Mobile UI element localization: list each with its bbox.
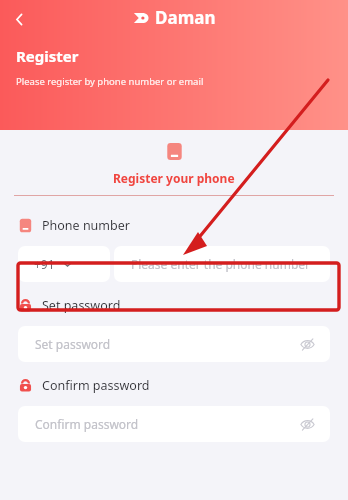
button[interactable]: Please enter the phone number	[114, 246, 330, 282]
button[interactable]: Show password	[298, 415, 316, 433]
button[interactable]: +91	[18, 246, 110, 282]
staticText: Please register by phone number or email	[16, 75, 204, 88]
button[interactable]: Register your phone	[113, 142, 235, 186]
staticText: Set password	[35, 336, 111, 352]
staticText: Confirm password	[42, 377, 150, 394]
staticText: Set password	[42, 297, 121, 314]
button[interactable]: Back	[5, 5, 33, 33]
staticText: +91	[34, 256, 55, 272]
staticText: Register	[16, 46, 79, 66]
staticText: Daman	[155, 6, 216, 29]
staticText: Please enter the phone number	[131, 256, 311, 272]
button[interactable]: Show password	[298, 335, 316, 353]
staticText: Phone number	[42, 217, 130, 234]
button[interactable]: Set password	[18, 326, 330, 362]
staticText: Confirm password	[35, 416, 139, 432]
staticText: Register your phone	[113, 170, 235, 186]
button[interactable]: Confirm password	[18, 406, 330, 442]
